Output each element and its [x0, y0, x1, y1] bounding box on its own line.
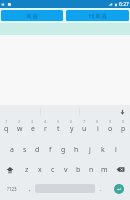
- button[interactable]: ?123: [0, 179, 24, 198]
- button[interactable]: Enter: [114, 184, 124, 194]
- button[interactable]: m: [98, 160, 111, 179]
- staticText: b: [76, 165, 81, 175]
- button[interactable]: Backspace: [111, 160, 130, 179]
- button[interactable]: g: [57, 140, 70, 160]
- button[interactable]: 0: [117, 120, 130, 140]
- staticText: ,: [29, 185, 31, 193]
- staticText: c: [51, 165, 55, 175]
- button[interactable]: s: [18, 140, 31, 160]
- button[interactable]: l: [109, 140, 122, 160]
- staticText: 6:27: [119, 1, 129, 8]
- button[interactable]: ,: [24, 179, 35, 198]
- staticText: u: [82, 124, 87, 134]
- staticText: 7: [83, 119, 86, 124]
- button[interactable]: v: [59, 160, 72, 179]
- button[interactable]: n: [85, 160, 98, 179]
- staticText: 9: [109, 119, 112, 124]
- staticText: h: [74, 145, 79, 155]
- button[interactable]: 3: [26, 120, 39, 140]
- staticText: p: [121, 124, 126, 134]
- staticText: 1: [5, 119, 8, 124]
- button[interactable]: 회원: [1, 10, 63, 21]
- staticText: 회원: [26, 12, 38, 20]
- staticText: e: [31, 124, 35, 134]
- staticText: 0: [122, 119, 125, 124]
- button[interactable]: 7: [78, 120, 91, 140]
- staticText: n: [89, 165, 94, 175]
- staticText: i: [97, 124, 99, 134]
- button[interactable]: 6: [65, 120, 78, 140]
- button[interactable]: Shift: [0, 160, 20, 179]
- button[interactable]: 5: [52, 120, 65, 140]
- button[interactable]: c: [46, 160, 59, 179]
- button[interactable]: 8: [91, 120, 104, 140]
- button[interactable]: a: [5, 140, 18, 160]
- staticText: 4: [44, 119, 47, 124]
- staticText: d: [35, 145, 40, 155]
- button[interactable]: j: [83, 140, 96, 160]
- staticText: s: [23, 145, 27, 155]
- button[interactable]: 비회원: [66, 10, 129, 21]
- staticText: f: [49, 145, 52, 155]
- staticText: o: [108, 124, 113, 134]
- staticText: 5: [57, 119, 60, 124]
- button[interactable]: d: [31, 140, 44, 160]
- staticText: a: [10, 145, 14, 155]
- staticText: x: [38, 165, 42, 175]
- button[interactable]: f: [44, 140, 57, 160]
- button[interactable]: x: [33, 160, 46, 179]
- staticText: 3: [31, 119, 34, 124]
- staticText: .: [100, 185, 102, 193]
- staticText: m: [101, 165, 108, 175]
- staticText: t: [57, 124, 60, 134]
- staticText: k: [101, 145, 105, 155]
- staticText: 6: [70, 119, 73, 124]
- button[interactable]: 1: [0, 120, 13, 140]
- button[interactable]: 9: [104, 120, 117, 140]
- staticText: ?123: [7, 186, 17, 192]
- button[interactable]: 4: [39, 120, 52, 140]
- staticText: v: [64, 165, 68, 175]
- staticText: 8: [96, 119, 99, 124]
- button[interactable]: z: [20, 160, 33, 179]
- staticText: j: [89, 145, 91, 155]
- staticText: z: [25, 165, 29, 175]
- button[interactable]: .: [95, 179, 106, 198]
- staticText: 2: [18, 119, 21, 124]
- button[interactable]: h: [70, 140, 83, 160]
- staticText: w: [17, 124, 23, 134]
- button[interactable]: k: [96, 140, 109, 160]
- staticText: g: [61, 145, 66, 155]
- staticText: y: [70, 124, 74, 134]
- staticText: l: [115, 145, 117, 155]
- button[interactable]: Hide keyboard: [114, 105, 130, 120]
- staticText: 비회원: [89, 12, 107, 20]
- staticText: q: [4, 124, 9, 134]
- button[interactable]: b: [72, 160, 85, 179]
- button[interactable]: 2: [13, 120, 26, 140]
- staticText: r: [44, 124, 47, 134]
